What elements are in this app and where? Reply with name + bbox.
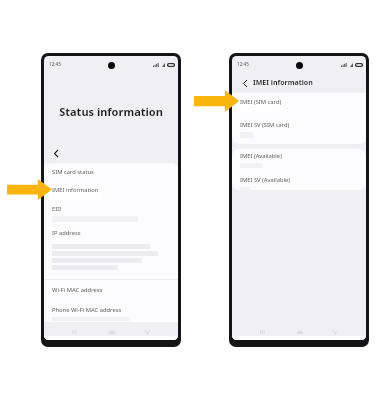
staticText: IMEI (Available) <box>240 152 282 160</box>
button[interactable]: IMEI information <box>44 182 178 194</box>
button[interactable]: Recents <box>257 326 268 337</box>
other: Pointer arrow <box>194 90 239 112</box>
staticText: EID <box>52 205 62 213</box>
staticText: 12:45 <box>237 61 249 67</box>
button[interactable]: Back <box>330 326 341 337</box>
staticText: IMEI SV (SIM card) <box>240 121 290 129</box>
button[interactable]: EID <box>44 201 178 222</box>
staticText: Wi-Fi MAC address <box>52 286 103 294</box>
staticText: IMEI SV (Available) <box>240 176 291 184</box>
button[interactable]: Home <box>294 326 305 337</box>
button[interactable]: Back <box>50 147 62 159</box>
button[interactable]: IP address <box>44 225 178 237</box>
button[interactable]: Recents <box>69 326 80 337</box>
button[interactable]: Back <box>142 326 153 337</box>
staticText: Status information <box>59 104 163 119</box>
other: Pointer arrow <box>7 179 52 200</box>
button[interactable]: IMEI SV (SIM card) <box>232 117 366 138</box>
staticText: 12:45 <box>49 61 61 67</box>
staticText: SIM card status <box>52 168 94 176</box>
button[interactable]: Home <box>106 326 117 337</box>
button[interactable]: Wi-Fi MAC address <box>44 282 178 294</box>
button[interactable]: Phone Wi-Fi MAC address <box>44 302 178 321</box>
button[interactable]: IMEI (Available) <box>232 149 366 168</box>
button[interactable]: SIM card status <box>44 164 178 176</box>
staticText: Phone Wi-Fi MAC address <box>52 306 122 314</box>
button[interactable]: IMEI SV (Available) <box>232 172 366 190</box>
staticText: IMEI information <box>253 78 313 88</box>
staticText: IMEI (SIM card) <box>240 98 282 106</box>
staticText: IP address <box>52 229 81 237</box>
button[interactable]: IMEI (SIM card) <box>232 94 366 106</box>
button[interactable]: Back <box>240 78 250 88</box>
staticText: IMEI information <box>52 186 99 194</box>
